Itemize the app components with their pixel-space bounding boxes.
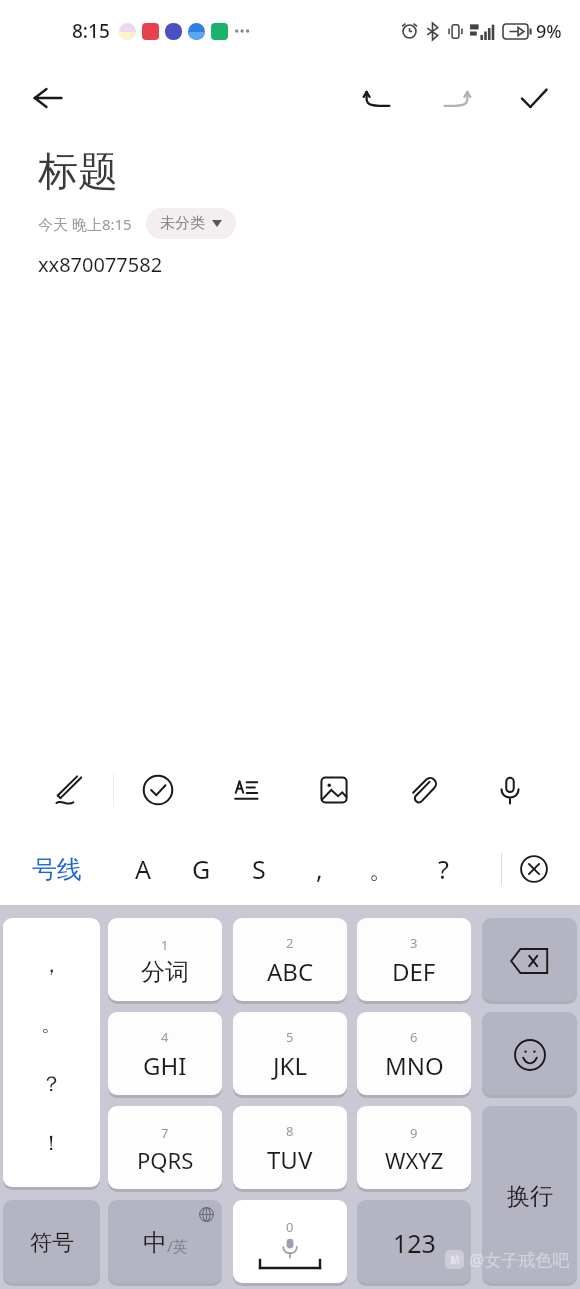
button[interactable]: 7 [108, 1106, 222, 1192]
button[interactable]: G [172, 833, 230, 905]
staticText: ！ [41, 1130, 62, 1156]
staticText: 分词 [141, 957, 189, 987]
staticText: 今天 晚上8:15 [38, 214, 132, 234]
button[interactable]: S [230, 833, 288, 905]
button[interactable]: 号线 [26, 846, 88, 893]
staticText: 。 [369, 854, 394, 885]
staticText: 中 [143, 1228, 167, 1258]
button[interactable]: Space, voice input [233, 1200, 347, 1286]
button[interactable]: Attach [378, 747, 466, 833]
button[interactable]: Undo [350, 70, 406, 126]
staticText: 换行 [507, 1182, 553, 1211]
staticText: ABC [267, 955, 314, 988]
staticText: xx870077582 [38, 251, 163, 278]
staticText: 4 [161, 1028, 169, 1046]
button[interactable]: Image [290, 747, 378, 833]
button[interactable]: 未分类 [146, 208, 236, 239]
button[interactable]: ? [412, 833, 474, 905]
button[interactable]: 4 [108, 1012, 222, 1098]
staticText: 3 [410, 934, 418, 952]
button[interactable]: 2 [233, 918, 347, 1004]
button[interactable]: Text style [202, 747, 290, 833]
button[interactable]: Back [22, 72, 74, 124]
staticText: PQRS [137, 1145, 194, 1175]
staticText: 9 [410, 1124, 418, 1142]
button[interactable]: 中 [108, 1200, 222, 1286]
button[interactable]: Emoji [482, 1012, 577, 1098]
staticText: , [316, 852, 323, 886]
button[interactable]: Redo [428, 70, 484, 126]
button[interactable]: Done [506, 70, 562, 126]
button[interactable]: Backspace [482, 918, 577, 1004]
staticText: 标题 [38, 146, 118, 196]
staticText: ? [438, 852, 449, 886]
staticText: 5 [286, 1028, 294, 1046]
staticText: TUV [267, 1143, 313, 1176]
staticText: /英 [167, 1236, 188, 1256]
button[interactable]: Voice [466, 747, 554, 833]
staticText: 0 [286, 1218, 294, 1236]
button[interactable]: , [288, 833, 350, 905]
staticText: MNO [385, 1049, 444, 1082]
button[interactable]: 3 [357, 918, 471, 1004]
staticText: WXYZ [385, 1145, 444, 1175]
button[interactable]: 123 [357, 1200, 471, 1286]
staticText: 贴 [450, 1253, 460, 1266]
staticText: 7 [161, 1124, 169, 1142]
button[interactable]: 1 [108, 918, 222, 1004]
staticText: 6 [410, 1028, 418, 1046]
button[interactable]: 。 [350, 833, 412, 905]
staticText: 。 [41, 1011, 62, 1037]
button[interactable]: 9 [357, 1106, 471, 1192]
staticText: 8 [286, 1122, 294, 1140]
staticText: 未分类 [160, 214, 205, 233]
button[interactable]: 5 [233, 1012, 347, 1098]
staticText: ， [41, 952, 62, 978]
staticText: A [135, 852, 151, 886]
staticText: 123 [393, 1226, 436, 1260]
staticText: G [192, 852, 211, 886]
button[interactable]: Handwriting [26, 747, 113, 833]
staticText: 8:15 [72, 18, 110, 44]
staticText: DEF [392, 955, 436, 988]
staticText: @女子戒色吧 [469, 1248, 570, 1271]
staticText: 2 [286, 934, 294, 952]
button[interactable]: 换行 [482, 1106, 577, 1286]
button[interactable]: 6 [357, 1012, 471, 1098]
staticText: ？ [41, 1071, 62, 1097]
button[interactable]: 符号 [3, 1200, 100, 1286]
staticText: 符号 [30, 1229, 74, 1257]
staticText: 9% [536, 19, 562, 44]
button[interactable]: Close keyboard [502, 833, 566, 905]
staticText: 号线 [32, 854, 82, 885]
button[interactable]: A [114, 833, 172, 905]
staticText: GHI [143, 1049, 187, 1082]
button[interactable]: Checklist [114, 747, 202, 833]
button[interactable]: ， [3, 918, 100, 1190]
staticText: JKL [273, 1049, 307, 1082]
staticText: S [252, 852, 266, 886]
staticText: 1 [161, 936, 169, 954]
button[interactable]: 8 [233, 1106, 347, 1192]
